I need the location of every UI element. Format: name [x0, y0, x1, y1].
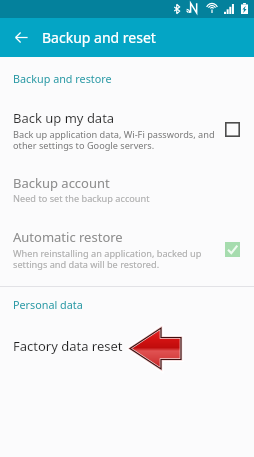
- button[interactable]: [0, 224, 254, 274]
- staticText: When reinstalling an application, backed…: [13, 247, 202, 270]
- staticText: Factory data reset: [13, 337, 123, 355]
- button[interactable]: Back up my data checkbox: [225, 122, 240, 137]
- staticText: Back up application data, Wi-Fi password…: [13, 128, 215, 151]
- staticText: Backup and restore: [13, 71, 112, 86]
- button[interactable]: Navigate up: [0, 18, 42, 57]
- other: Automatic restore checkbox, checked: [225, 242, 240, 257]
- staticText: Need to set the backup account: [13, 192, 150, 205]
- button[interactable]: [0, 103, 254, 155]
- button[interactable]: [0, 170, 254, 208]
- staticText: Backup account: [13, 174, 110, 192]
- staticText: Back up my data: [13, 109, 115, 127]
- button[interactable]: [0, 333, 254, 359]
- staticText: Automatic restore: [13, 228, 123, 246]
- staticText: Personal data: [13, 297, 83, 312]
- staticText: Backup and reset: [42, 28, 156, 47]
